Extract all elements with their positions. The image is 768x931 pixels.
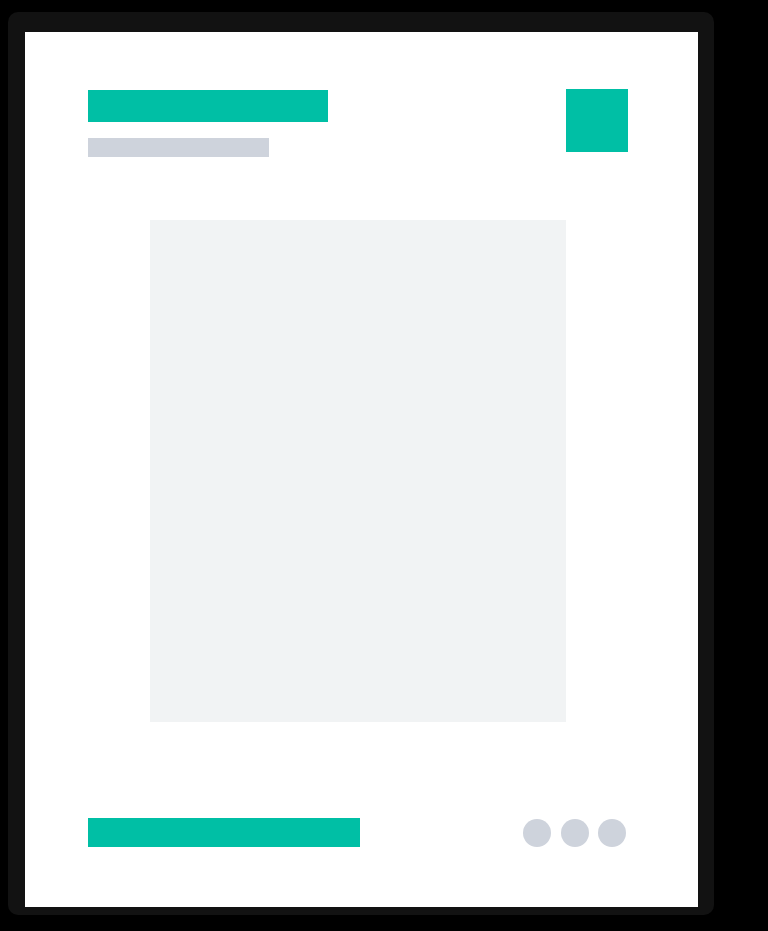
button[interactable]: Page indicator <box>523 819 626 847</box>
